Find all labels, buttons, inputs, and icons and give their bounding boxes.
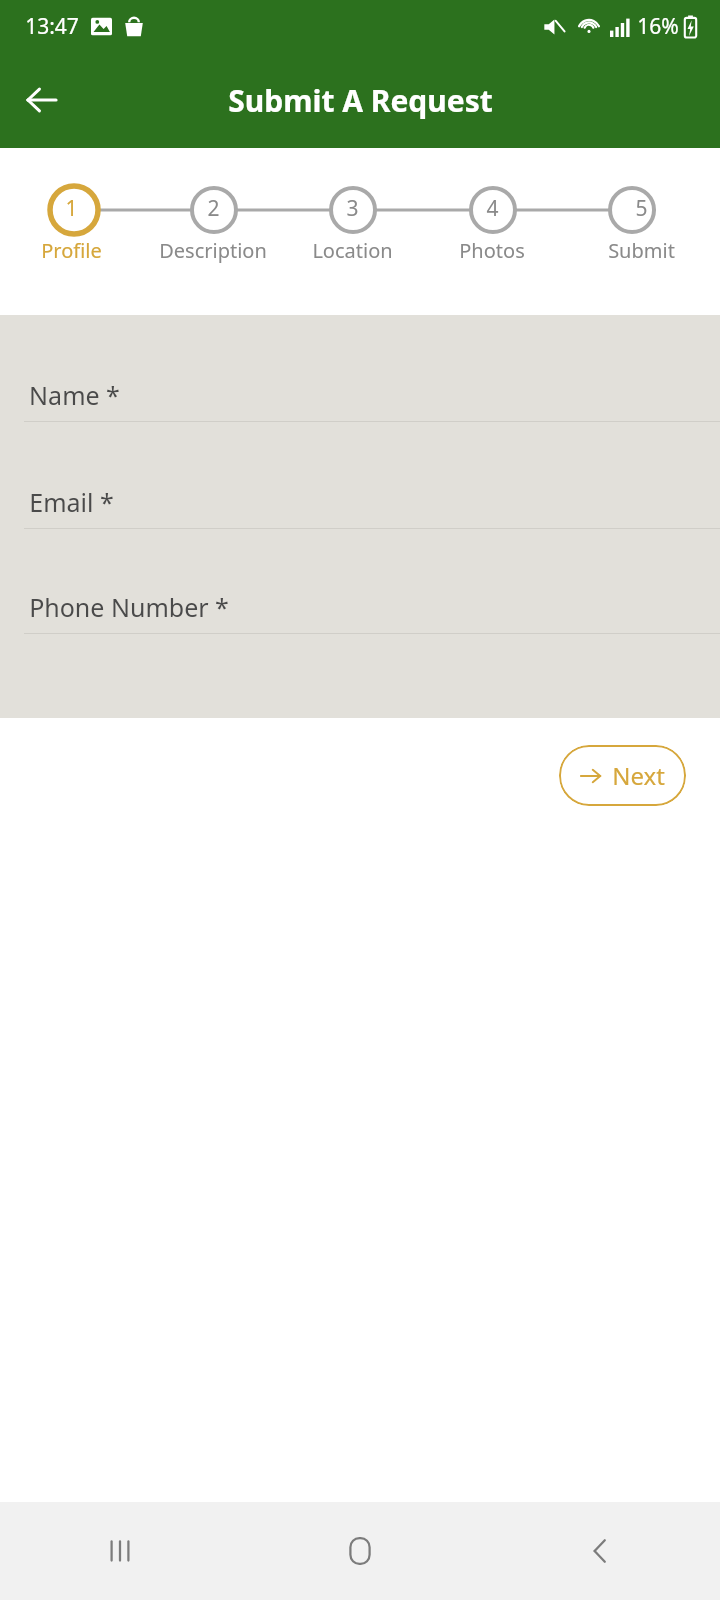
staticText: Email * [29, 485, 114, 519]
staticText: Phone Number * [29, 590, 229, 624]
button[interactable]: Back [14, 72, 70, 128]
staticText: Submit [608, 237, 675, 264]
button[interactable]: 5 [562, 148, 720, 264]
button[interactable]: Recent apps [0, 1502, 240, 1600]
button[interactable]: Email * [0, 484, 720, 529]
button[interactable]: 3 [283, 148, 422, 264]
staticText: 4 [486, 194, 499, 223]
staticText: 2 [207, 194, 220, 223]
staticText: 13:47 [25, 12, 79, 41]
button[interactable]: 4 [422, 148, 562, 264]
staticText: Name * [29, 378, 120, 412]
button[interactable]: 1 [0, 148, 143, 264]
staticText: Profile [41, 237, 102, 264]
staticText: 16% [637, 12, 679, 41]
staticText: 1 [65, 194, 78, 223]
staticText: Description [159, 237, 267, 264]
staticText: 3 [346, 194, 359, 223]
button[interactable]: Back [480, 1502, 720, 1600]
button[interactable]: Next [559, 745, 686, 806]
button[interactable]: Name * [0, 377, 720, 422]
button[interactable]: 2 [143, 148, 283, 264]
staticText: Photos [459, 237, 525, 264]
button[interactable]: Home [240, 1502, 480, 1600]
staticText: 5 [635, 194, 648, 223]
staticText: Next [612, 759, 665, 792]
button[interactable]: Phone Number * [0, 589, 720, 634]
staticText: Submit A Request [228, 80, 493, 121]
staticText: Location [312, 237, 393, 264]
